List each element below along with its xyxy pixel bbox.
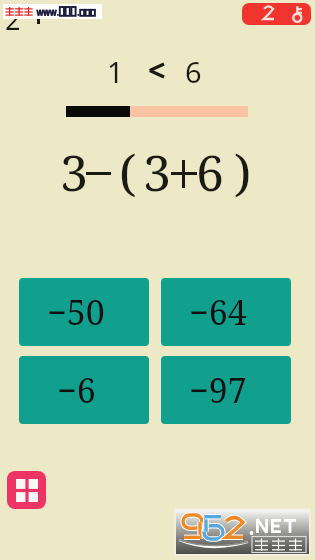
button[interactable]: −50 [19,278,149,346]
button[interactable]: −64 [161,278,291,346]
button[interactable]: −6 [19,356,149,424]
staticText: ( [119,138,137,206]
staticText: 3 [143,138,171,206]
button[interactable]: Menu [7,471,46,509]
staticText: −50 [47,289,105,335]
staticText: 2 [5,1,21,38]
staticText: −6 [57,367,96,413]
staticText: 1 [107,52,124,91]
staticText: ) [234,138,252,206]
staticText: 6 [185,52,202,91]
staticText: −97 [189,367,247,413]
button[interactable]: Keys remaining: 2 [242,3,311,25]
staticText: 3 [60,138,88,206]
button[interactable]: −97 [161,356,291,424]
staticText: 6 [196,138,224,206]
staticText: −64 [189,289,247,335]
